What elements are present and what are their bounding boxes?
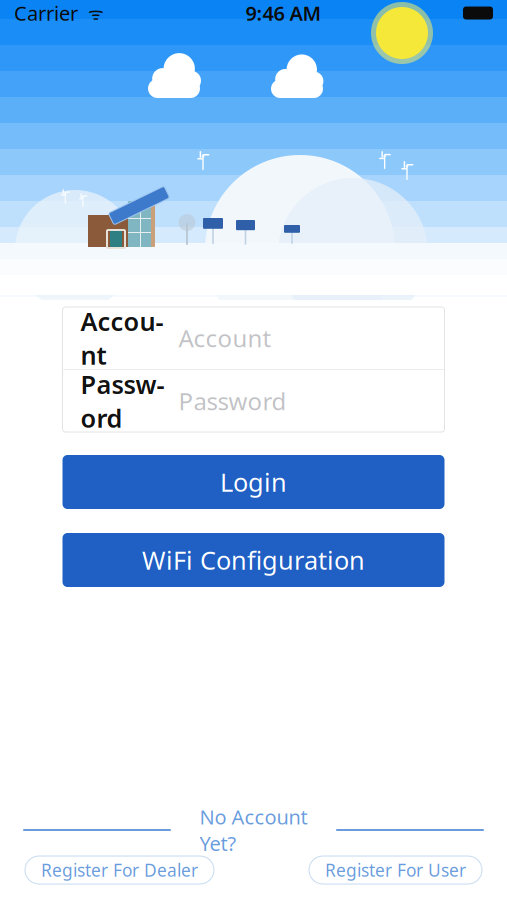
staticText: ᯤ <box>78 1 104 24</box>
button[interactable]: Login <box>62 455 444 509</box>
staticText: Password <box>80 367 164 435</box>
staticText: Carrier <box>14 0 78 26</box>
staticText: Password <box>178 385 286 417</box>
staticText: WiFi Configuration <box>142 543 365 577</box>
staticText: Account <box>80 304 163 372</box>
staticText: Login <box>220 465 287 499</box>
staticText: No Account Yet? <box>199 803 307 856</box>
button[interactable]: WiFi Configuration <box>62 533 444 587</box>
staticText: Register For User <box>325 858 466 881</box>
button[interactable]: Register For User <box>309 856 482 884</box>
staticText: Register For Dealer <box>41 858 198 881</box>
staticText: 9:46 AM <box>245 0 321 26</box>
staticText: Account <box>178 322 271 354</box>
button[interactable]: Register For Dealer <box>25 856 214 884</box>
